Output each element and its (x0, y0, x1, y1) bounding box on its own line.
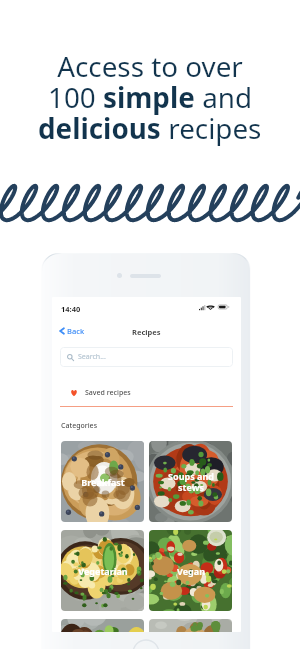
staticText: recipes (161, 109, 262, 147)
staticText: Vegan (177, 565, 205, 577)
button[interactable] (149, 619, 232, 632)
button[interactable]: Soups and stews (149, 441, 232, 522)
button[interactable]: Vegetarian (61, 530, 144, 611)
staticText: Recipes (132, 327, 161, 337)
staticText: Vegetarian (78, 565, 128, 577)
staticText: delicious (38, 109, 161, 147)
button[interactable]: Search... (60, 347, 233, 367)
button[interactable]: Breakfast (61, 441, 144, 522)
staticText: Categories (61, 421, 98, 431)
button[interactable]: Back (58, 324, 85, 338)
staticText: Back (67, 326, 85, 336)
button[interactable]: Saved recipes (60, 377, 233, 408)
staticText: Soups and stews (168, 470, 214, 493)
staticText: Saved recipes (85, 388, 131, 398)
staticText: simple (103, 78, 195, 116)
staticText: Access to over (57, 47, 243, 85)
staticText: 100 (48, 78, 103, 116)
staticText: Search... (78, 352, 106, 362)
button[interactable]: Vegan (149, 530, 232, 611)
button[interactable] (61, 619, 144, 632)
staticText: 14:40 (61, 304, 81, 314)
staticText: Breakfast (81, 476, 125, 488)
staticText: and (195, 78, 253, 116)
